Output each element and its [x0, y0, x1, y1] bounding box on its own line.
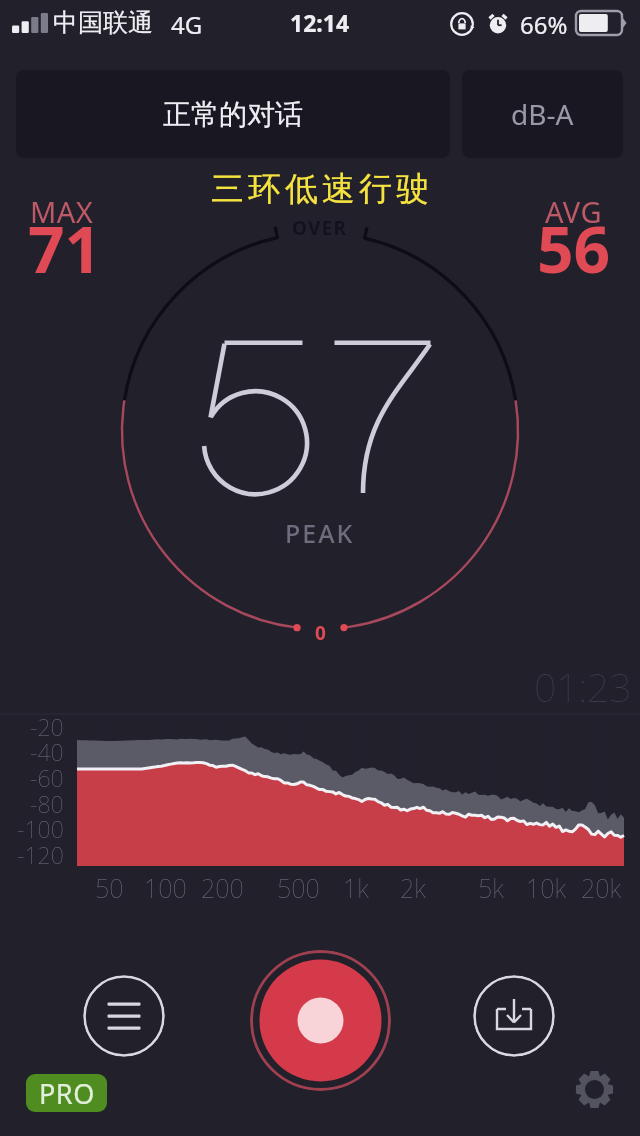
button[interactable]: Save [473, 975, 555, 1057]
button[interactable]: PRO [26, 1074, 107, 1112]
staticText: -120 [17, 839, 64, 870]
staticText: 100 [144, 871, 187, 905]
staticText: MAX [30, 192, 94, 231]
staticText: 三环低速行驶 [209, 168, 431, 210]
staticText: -20 [30, 711, 64, 742]
staticText: PEAK [285, 516, 355, 550]
staticText: 10k [526, 871, 566, 905]
staticText: 500 [277, 871, 320, 905]
staticText: OVER [292, 215, 348, 241]
staticText: -80 [30, 788, 64, 819]
button[interactable]: Record [250, 950, 391, 1091]
staticText: 5k [478, 871, 504, 905]
staticText: 4G [171, 8, 203, 41]
staticText: 20k [581, 871, 621, 905]
staticText: 50 [95, 871, 124, 905]
staticText: dB-A [511, 95, 574, 133]
staticText: 中国联通 [53, 7, 153, 38]
staticText: 66% [520, 8, 568, 41]
staticText: 2k [400, 871, 426, 905]
staticText: 1k [343, 871, 369, 905]
staticText: 0 [315, 620, 326, 646]
staticText: 01:23 [534, 660, 632, 713]
button[interactable]: Settings [575, 1070, 614, 1109]
staticText: -100 [17, 813, 64, 844]
staticText: -60 [30, 762, 64, 793]
staticText: -40 [30, 736, 64, 767]
staticText: 12:14 [290, 7, 350, 38]
staticText: 71 [28, 205, 102, 292]
staticText: 正常的对话 [163, 97, 303, 132]
staticText: AVG [545, 192, 603, 231]
button[interactable]: 正常的对话 [16, 70, 450, 158]
staticText: PRO [39, 1075, 95, 1112]
staticText: 56 [537, 205, 611, 292]
staticText: 200 [201, 871, 244, 905]
button[interactable]: Menu [83, 975, 165, 1057]
button[interactable]: dB-A [462, 70, 623, 158]
